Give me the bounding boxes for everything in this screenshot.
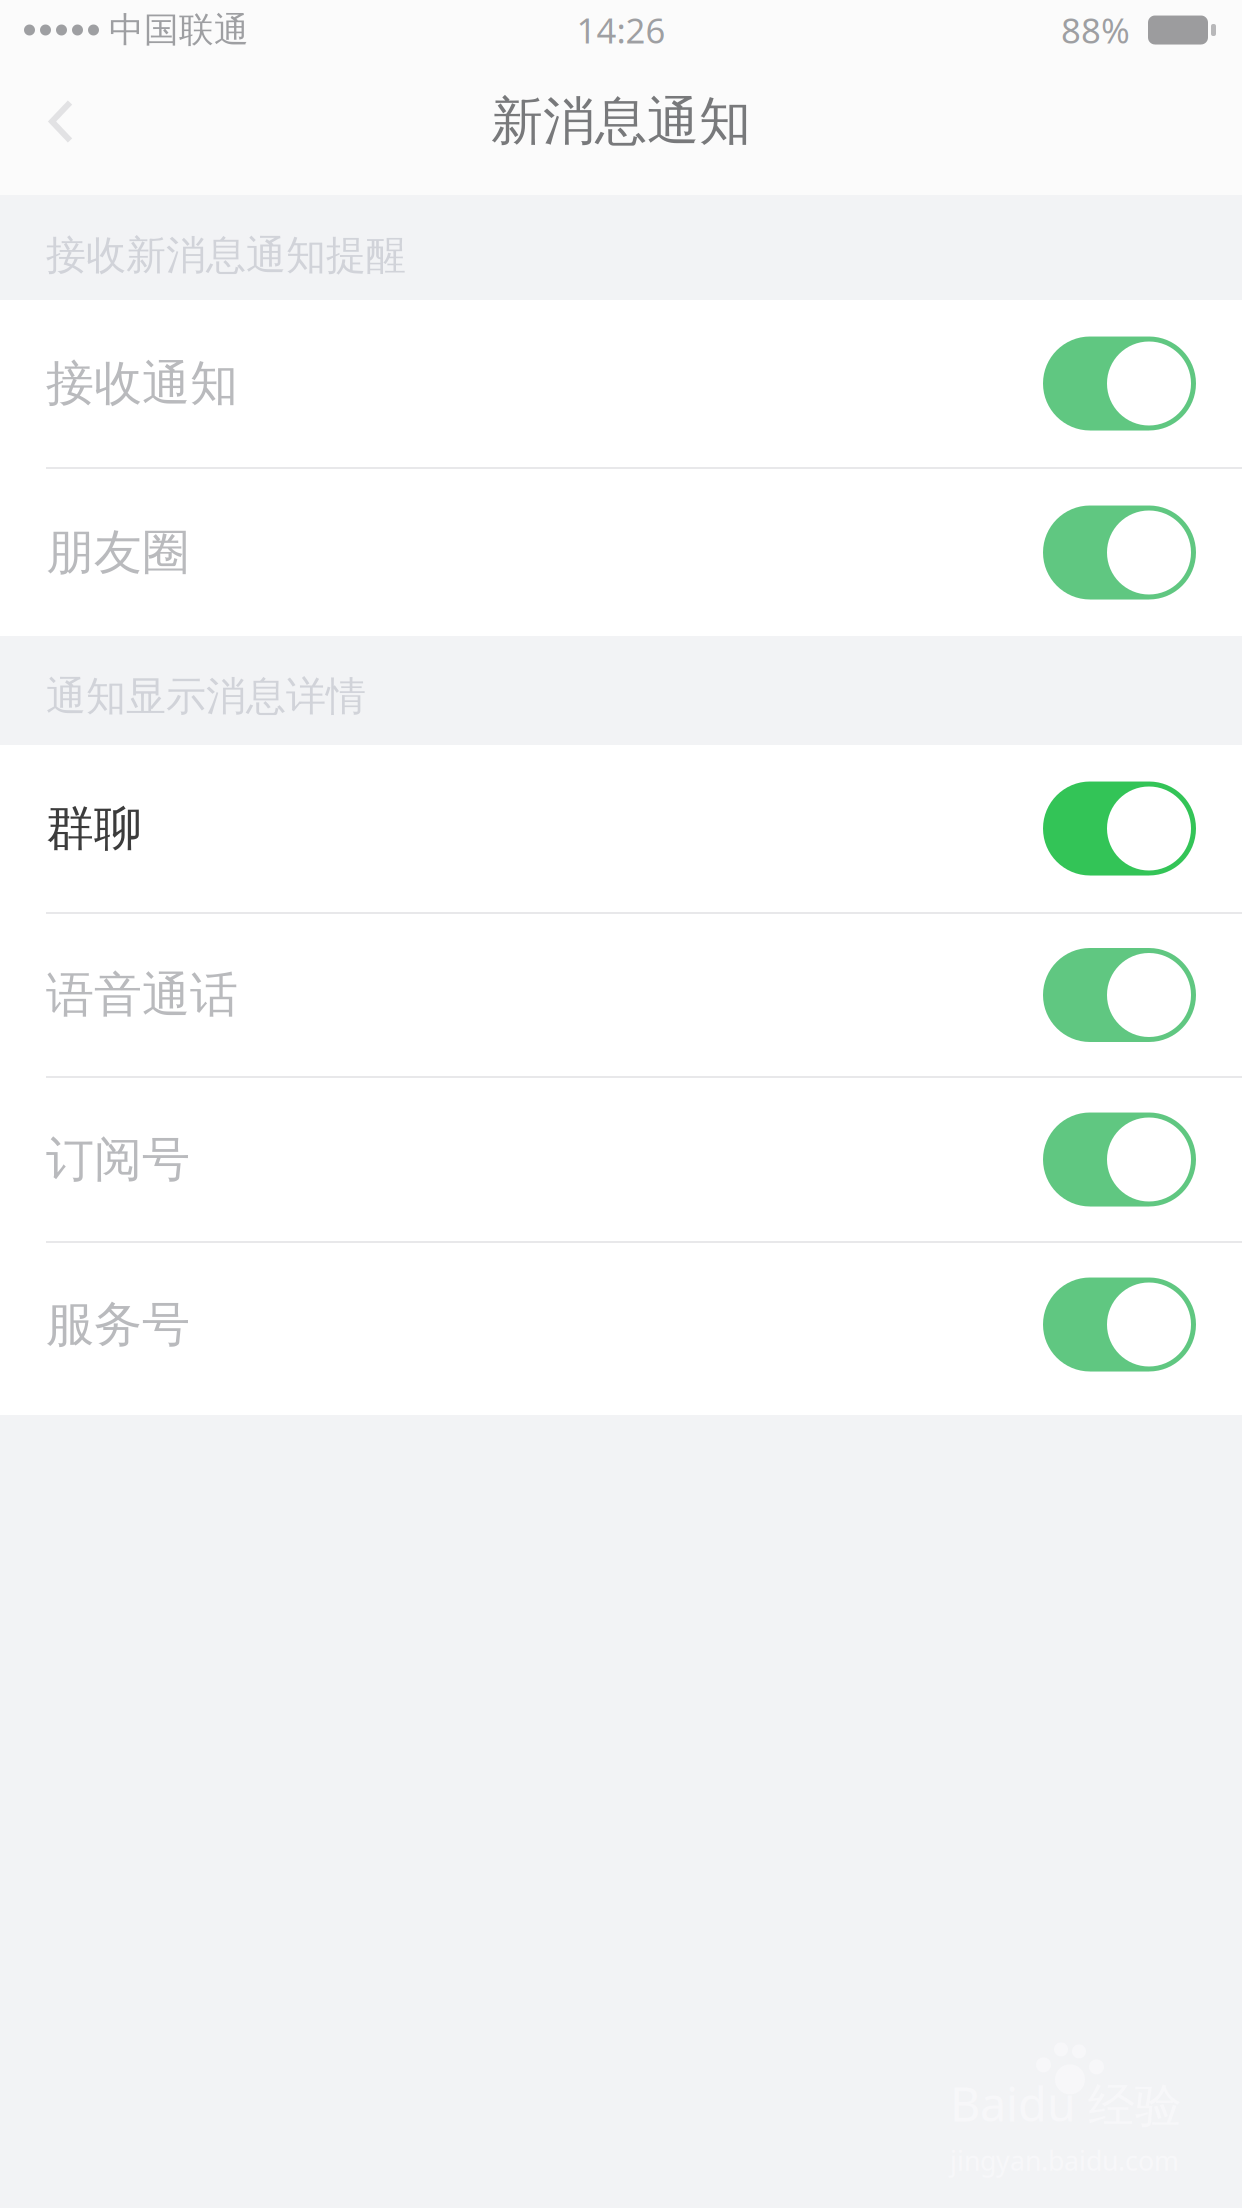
button[interactable]: 接收通知 [0,300,1242,467]
button[interactable]: 服务号 [0,1243,1242,1406]
button[interactable]: 语音通话 [0,914,1242,1076]
staticText: 中国联通 [99,9,249,51]
button[interactable]: 群聊 [0,745,1242,912]
button[interactable]: 返回 [0,54,78,201]
staticText: 88% [1061,7,1148,53]
staticText: 14:26 [576,7,665,53]
staticText: 群聊 [46,799,142,858]
staticText: 新消息通知 [491,90,751,153]
button[interactable]: 订阅号 [0,1078,1242,1241]
staticText: 接收新消息通知提醒 [46,231,406,280]
staticText: 语音通话 [46,965,238,1024]
staticText: 服务号 [46,1295,190,1354]
staticText: 订阅号 [46,1130,190,1189]
staticText: 朋友圈 [46,523,190,582]
staticText: 通知显示消息详情 [46,672,366,721]
button[interactable]: 朋友圈 [0,469,1242,636]
staticText: 接收通知 [46,354,238,413]
